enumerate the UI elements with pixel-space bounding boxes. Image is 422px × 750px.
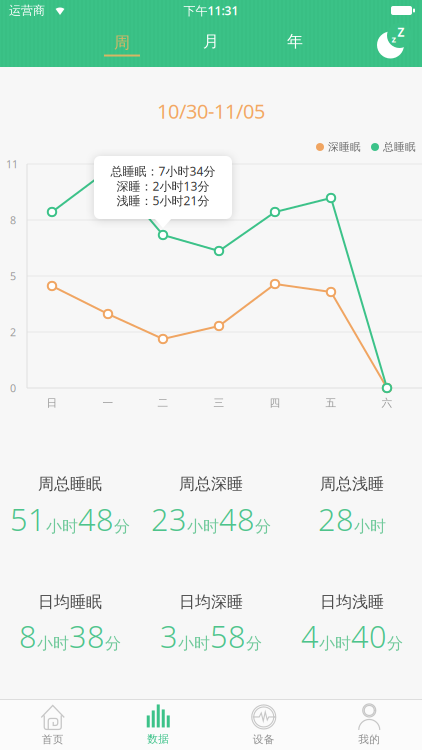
staticText: 我的 <box>358 733 380 746</box>
staticText: 分 <box>105 634 121 653</box>
staticText: 深睡：2小时13分 <box>116 178 209 194</box>
staticText: 周总深睡 <box>179 474 243 494</box>
staticText: 深睡眠 <box>328 140 361 153</box>
staticText: 28 <box>318 499 354 539</box>
staticText: 38 <box>69 616 105 656</box>
staticText: 小时 <box>46 517 78 536</box>
staticText: 8 <box>19 616 37 656</box>
staticText: 总睡眠：7小时34分 <box>110 163 215 179</box>
staticText: 小时 <box>37 634 69 653</box>
staticText: 4 <box>301 616 319 656</box>
staticText: 六 <box>381 396 392 409</box>
button[interactable]: 数据 <box>106 700 211 749</box>
staticText: 月 <box>203 32 219 51</box>
staticText: 48 <box>78 499 114 539</box>
staticText: 10/30-11/05 <box>157 98 265 124</box>
staticText: 日 <box>46 396 57 409</box>
staticText: 分 <box>387 634 403 653</box>
staticText: 首页 <box>42 733 64 746</box>
staticText: 二 <box>157 396 168 409</box>
staticText: 周总睡眠 <box>38 474 102 494</box>
staticText: 3 <box>160 616 178 656</box>
staticText: 四 <box>269 396 280 409</box>
staticText: Z <box>397 24 404 40</box>
staticText: 分 <box>246 634 262 653</box>
staticText: 周 <box>114 33 130 53</box>
staticText: 51 <box>10 499 46 539</box>
staticText: 8 <box>10 213 16 227</box>
staticText: 周总浅睡 <box>320 474 384 494</box>
staticText: 日均浅睡 <box>320 592 384 612</box>
staticText: 23 <box>151 499 187 539</box>
staticText: 48 <box>219 499 255 539</box>
button[interactable]: 月 <box>181 21 241 61</box>
button[interactable]: 年 <box>265 21 325 61</box>
staticText: 58 <box>210 616 246 656</box>
button[interactable]: 我的 <box>317 700 422 749</box>
staticText: 小时 <box>354 517 386 536</box>
staticText: 总睡眠 <box>383 140 416 153</box>
staticText: z <box>391 33 396 45</box>
button[interactable]: 睡眠模式 <box>368 24 412 64</box>
staticText: 小时 <box>178 634 210 653</box>
button[interactable]: 周 <box>92 25 152 65</box>
staticText: 日均深睡 <box>179 592 243 612</box>
staticText: 小时 <box>187 517 219 536</box>
staticText: 分 <box>255 517 271 536</box>
staticText: 40 <box>351 616 387 656</box>
staticText: 年 <box>287 32 303 51</box>
staticText: 下午11:31 <box>183 2 238 18</box>
button[interactable]: 首页 <box>0 700 105 749</box>
staticText: 运营商 <box>9 3 45 18</box>
staticText: 设备 <box>253 733 275 746</box>
staticText: 5 <box>10 269 16 283</box>
staticText: 三 <box>213 396 224 409</box>
staticText: 2 <box>10 325 16 339</box>
staticText: 五 <box>325 396 336 409</box>
staticText: 分 <box>114 517 130 536</box>
staticText: 一 <box>102 396 113 409</box>
staticText: 11 <box>6 157 18 171</box>
staticText: 浅睡：5小时21分 <box>116 192 209 208</box>
staticText: 0 <box>10 381 16 395</box>
staticText: 数据 <box>147 732 169 745</box>
staticText: 日均睡眠 <box>38 592 102 612</box>
button[interactable]: 设备 <box>211 700 316 749</box>
staticText: 小时 <box>319 634 351 653</box>
